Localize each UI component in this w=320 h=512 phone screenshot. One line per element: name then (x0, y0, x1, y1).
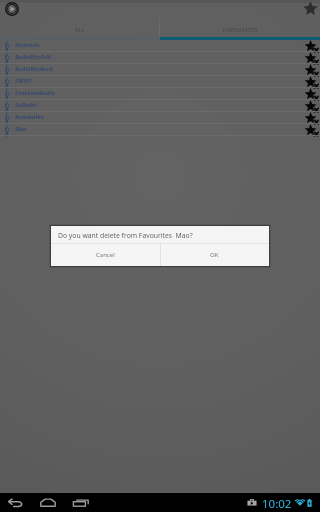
staticText: FAVOURITES (223, 26, 258, 33)
button[interactable]: FAVOURITES (160, 18, 320, 40)
button[interactable]: Remove from favourites (305, 89, 319, 101)
staticText: Mao (15, 126, 27, 133)
button[interactable]: RadioHeyRock (0, 64, 320, 76)
button[interactable]: Mao (0, 124, 320, 136)
staticText: Cancel (96, 251, 115, 259)
staticText: ALL (75, 26, 86, 33)
button[interactable]: AcRadio (0, 100, 320, 112)
button[interactable]: Favourites (302, 0, 319, 17)
staticText: 10:02 (262, 496, 292, 512)
staticText: RadioHeyRock (15, 66, 53, 73)
button[interactable]: ALL (0, 18, 160, 40)
button[interactable]: OK (160, 244, 269, 266)
button[interactable]: Remove from favourites (305, 53, 319, 65)
button[interactable]: LrabalanRadio (0, 88, 320, 100)
button[interactable]: Remove from favourites (305, 113, 319, 125)
button[interactable]: RadioHeyFolk (0, 52, 320, 64)
staticText: Do you want delete from Favourites Mao? (58, 231, 193, 240)
button[interactable]: Cancel (51, 244, 160, 266)
staticText: RadioHeyFolk (15, 54, 52, 61)
button[interactable]: Remove from favourites (305, 101, 319, 113)
staticText: AcRadio (15, 102, 37, 109)
button[interactable]: Remove from favourites (305, 65, 319, 77)
staticText: FM107 (15, 78, 32, 85)
button[interactable]: Recents (71, 495, 91, 511)
staticText: LrabalanRadio (15, 90, 55, 97)
button[interactable]: Remove from favourites (305, 125, 319, 137)
button[interactable]: Play (5, 2, 19, 16)
button[interactable]: Heaveyin (0, 40, 320, 52)
button[interactable]: Home (38, 495, 58, 511)
staticText: Romantika (15, 114, 44, 121)
button[interactable]: Remove from favourites (305, 77, 319, 89)
staticText: OK (210, 251, 219, 259)
button[interactable]: Back (6, 495, 26, 511)
button[interactable]: Romantika (0, 112, 320, 124)
button[interactable]: Remove from favourites (305, 41, 319, 53)
staticText: Heaveyin (15, 42, 40, 49)
button[interactable]: FM107 (0, 76, 320, 88)
